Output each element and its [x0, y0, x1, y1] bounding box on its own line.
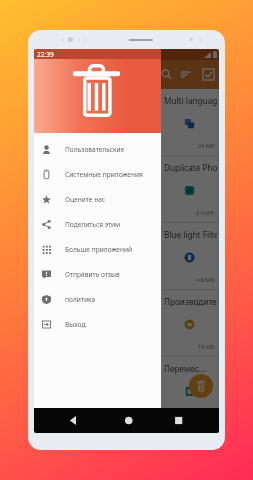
staticText: Multi languag...	[164, 95, 217, 106]
staticText: Перемес...	[164, 363, 206, 374]
button[interactable]: Search	[157, 65, 176, 84]
staticText: Производите...	[164, 296, 217, 307]
button[interactable]: Music Player	[49, 223, 105, 290]
button[interactable]: Системные приложения	[34, 162, 161, 187]
staticText: 22:39	[37, 50, 54, 59]
button[interactable]: Translator	[105, 357, 161, 424]
staticText: Поделиться этим	[65, 220, 121, 229]
staticText: 24 MB	[198, 142, 215, 150]
button[interactable]: Производите...	[161, 290, 217, 357]
staticText: 12 MB	[86, 142, 103, 150]
button[interactable]: Notes Pro	[105, 223, 161, 290]
button[interactable]: Blue light Filter	[161, 223, 217, 290]
button[interactable]: Multi languag...	[161, 89, 217, 156]
staticText: Video Player	[108, 95, 156, 106]
staticText: Blue light Filter	[164, 229, 217, 240]
staticText: Smart App Lo	[52, 95, 104, 106]
button[interactable]: Video Player	[105, 89, 161, 156]
button[interactable]: Больше приложений	[34, 237, 161, 262]
button[interactable]: Duplicate Pho...	[161, 156, 217, 223]
button[interactable]: политика	[34, 287, 161, 312]
staticText: Больше приложений	[65, 245, 133, 254]
staticText: Системные приложения	[65, 170, 143, 179]
button[interactable]: Поделиться этим	[34, 212, 161, 237]
button[interactable]: Photo Editor	[49, 156, 105, 223]
button[interactable]: QR Scanner	[105, 156, 161, 223]
button[interactable]: Calculator	[49, 290, 105, 357]
staticText: 6.4 MB	[196, 209, 215, 217]
staticText: Отправить отзыв	[65, 270, 120, 279]
button[interactable]: Выход	[34, 312, 161, 337]
button[interactable]: Оцените нас	[34, 187, 161, 212]
staticText: политика	[65, 295, 96, 304]
button[interactable]: Delete	[189, 374, 213, 398]
staticText: Пользовательские	[65, 145, 125, 154]
staticText: Photo Editor	[52, 162, 100, 173]
button[interactable]: Пользовательские	[34, 137, 161, 162]
button[interactable]: Smart App Lo	[49, 89, 105, 156]
staticText: Calculator	[52, 296, 91, 307]
button[interactable]: Select all	[199, 65, 218, 84]
button[interactable]: File Share	[49, 357, 105, 424]
staticText: Выход	[65, 320, 86, 329]
staticText: Duplicate Pho...	[164, 162, 217, 173]
staticText: 5 MB	[89, 276, 103, 284]
button[interactable]: Отправить отзыв	[34, 262, 161, 287]
staticText: Оцените нас	[65, 195, 106, 204]
button[interactable]: Sort	[176, 65, 195, 84]
staticText: 4.8 MB	[196, 276, 215, 284]
button[interactable]: Перемес...	[161, 357, 217, 424]
staticText: 18 MB	[198, 343, 215, 351]
